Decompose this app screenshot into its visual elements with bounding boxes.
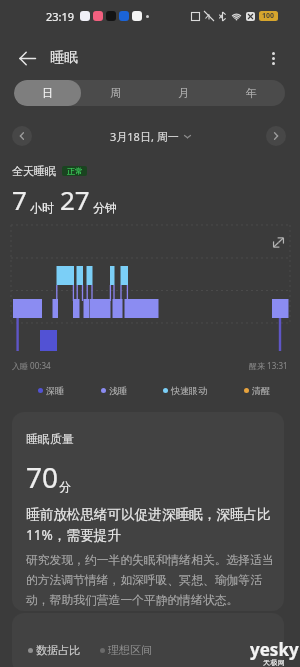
staticText: 日 xyxy=(42,86,53,100)
staticText: 数据占比 xyxy=(36,643,80,657)
staticText: 清醒 xyxy=(252,385,270,396)
staticText: 理想区间 xyxy=(108,643,152,657)
staticText: 100 xyxy=(262,11,275,21)
button[interactable]: Back xyxy=(10,41,44,75)
staticText: 分 xyxy=(59,479,71,494)
staticText: 周 xyxy=(110,86,121,100)
staticText: 浅睡 xyxy=(109,385,127,396)
button[interactable]: Next day xyxy=(266,126,286,146)
staticText: yesky xyxy=(250,638,299,661)
staticText: 70 xyxy=(26,458,59,496)
staticText: 23:19 xyxy=(46,9,75,24)
button[interactable]: 周 xyxy=(81,80,149,106)
staticText: 研究发现，约一半的失眠和情绪相关。选择适当的方法调节情绪，如深呼吸、冥想、瑜伽等… xyxy=(26,553,276,607)
button[interactable]: 月 xyxy=(149,80,217,106)
staticText: 深睡 xyxy=(46,385,64,396)
button[interactable]: 3月18日, 周一 xyxy=(110,129,191,144)
staticText: 小时 xyxy=(30,200,54,215)
staticText: 7 xyxy=(12,182,27,217)
button[interactable]: Expand chart xyxy=(268,232,288,252)
staticText: 快速眼动 xyxy=(171,385,207,396)
staticText: 天极网 xyxy=(263,658,286,667)
button[interactable]: 年 xyxy=(217,80,285,106)
staticText: 正常 xyxy=(67,166,83,176)
staticText: 醒来 13:31 xyxy=(249,360,288,371)
staticText: 睡眠 xyxy=(50,49,78,67)
staticText: 27 xyxy=(60,182,90,217)
staticText: 年 xyxy=(246,86,257,100)
staticText: 入睡 00:34 xyxy=(12,360,51,371)
button[interactable]: 日 xyxy=(14,80,81,106)
staticText: 3月18日, 周一 xyxy=(110,129,179,144)
staticText: 睡眠质量 xyxy=(26,431,74,446)
button[interactable]: Previous day xyxy=(12,126,32,146)
button[interactable]: More options xyxy=(258,43,288,73)
staticText: 睡前放松思绪可以促进深睡眠，深睡占比11%，需要提升 xyxy=(26,506,276,545)
staticText: 月 xyxy=(178,86,189,100)
staticText: 分钟 xyxy=(93,200,117,215)
staticText: 全天睡眠 xyxy=(12,164,56,178)
